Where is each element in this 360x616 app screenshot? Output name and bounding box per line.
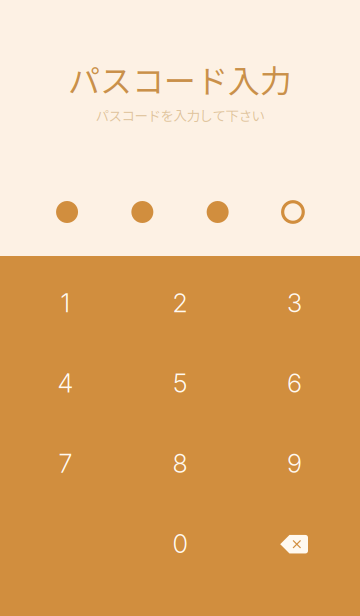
staticText: 7	[58, 448, 72, 479]
button[interactable]: 2	[123, 263, 237, 343]
button[interactable]: 4	[8, 343, 123, 423]
button[interactable]: 5	[123, 343, 237, 423]
button[interactable]: 0	[123, 504, 237, 584]
staticText: 4	[57, 368, 73, 399]
staticText: 5	[173, 368, 187, 399]
button[interactable]: 9	[237, 423, 352, 504]
button[interactable]: Delete	[237, 504, 352, 584]
staticText: パスコードを入力して下さい	[95, 105, 264, 125]
staticText: 9	[287, 448, 302, 479]
button[interactable]: 7	[8, 423, 123, 504]
staticText: 0	[172, 528, 187, 559]
staticText: 6	[287, 368, 302, 399]
staticText: 1	[60, 288, 70, 318]
staticText: 2	[172, 288, 187, 318]
staticText: 3	[287, 288, 302, 318]
staticText: 8	[172, 448, 187, 479]
button[interactable]: 8	[123, 423, 237, 504]
staticText: パスコード入力	[68, 56, 292, 102]
button[interactable]: 6	[237, 343, 352, 423]
button[interactable]: 3	[237, 263, 352, 343]
button[interactable]: 1	[8, 263, 123, 343]
